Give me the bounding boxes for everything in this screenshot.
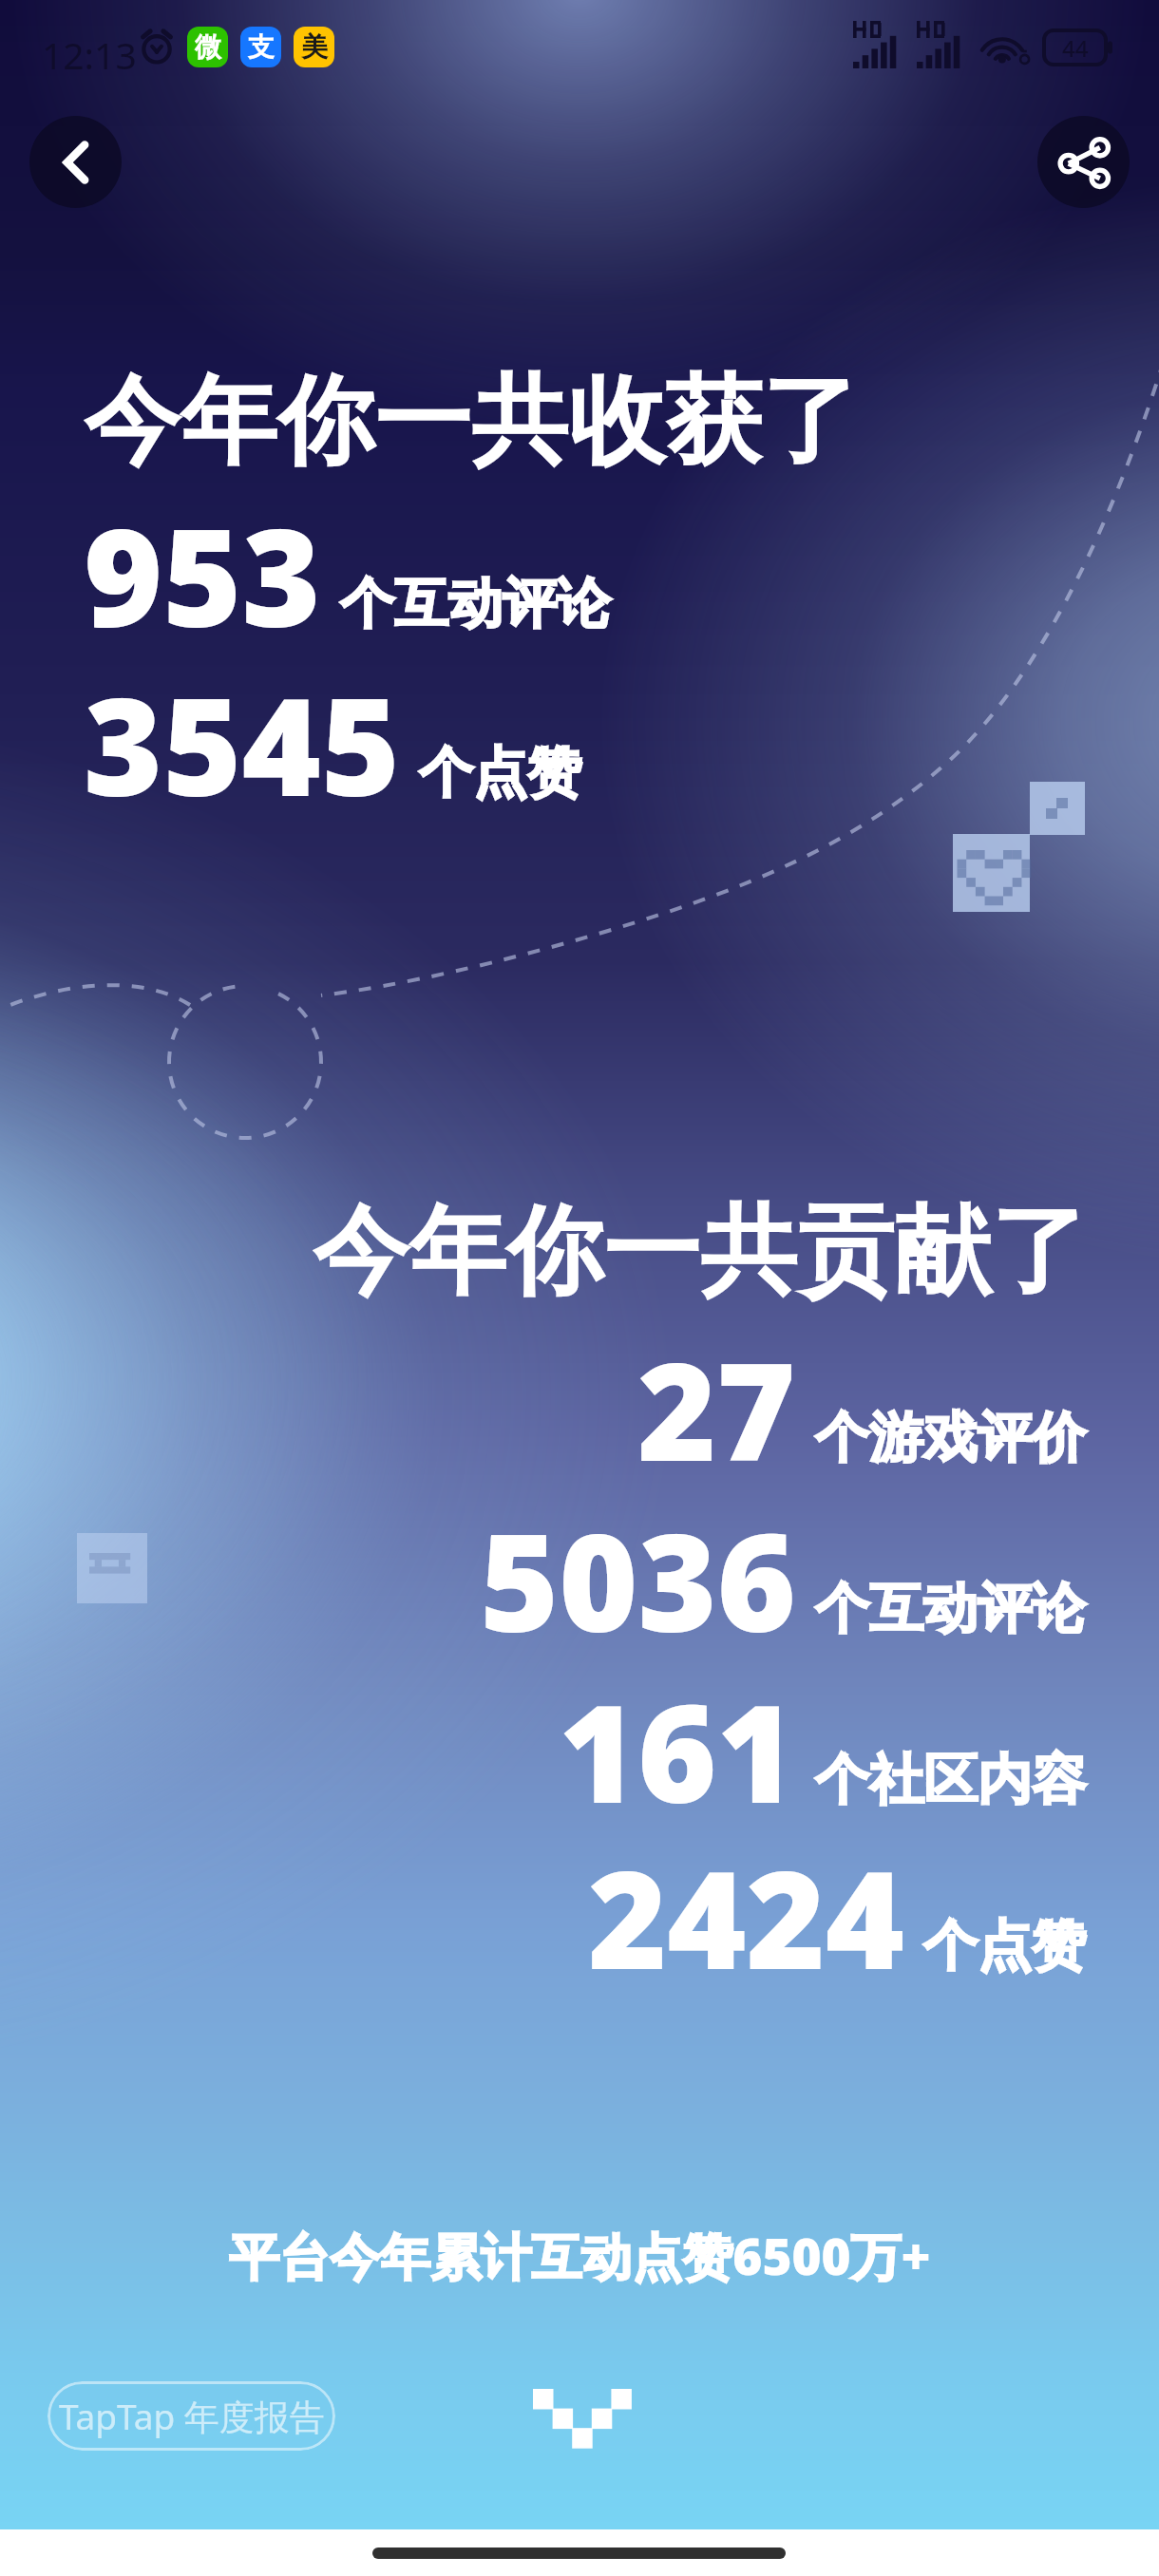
staticText: 微: [195, 30, 221, 64]
staticText: 27: [637, 1316, 796, 1500]
staticText: 今年你一共贡献了: [313, 1191, 1088, 1313]
button[interactable]: TapTap 年度报告: [47, 2381, 335, 2451]
staticText: 个点赞: [419, 739, 581, 807]
staticText: 个社区内容: [815, 1746, 1086, 1814]
staticText: 个互动评论: [815, 1575, 1086, 1643]
staticText: 美: [301, 30, 328, 64]
staticText: TapTap 年度报告: [59, 2392, 325, 2440]
staticText: 个互动评论: [340, 570, 611, 638]
staticText: 2424: [588, 1825, 904, 2008]
staticText: 12:13: [42, 29, 137, 80]
staticText: 今年你一共收获了: [84, 361, 859, 483]
staticText: 支: [248, 30, 275, 64]
button[interactable]: Back: [29, 116, 122, 208]
staticText: 个游戏评价: [815, 1404, 1086, 1472]
staticText: 3545: [84, 652, 400, 835]
staticText: 5036: [480, 1487, 796, 1671]
staticText: 44: [1062, 32, 1089, 64]
staticText: 953: [84, 483, 321, 666]
button[interactable]: Share: [1037, 116, 1130, 208]
staticText: 161: [559, 1658, 796, 1842]
staticText: 平台今年累计互动点赞6500万+: [229, 2221, 931, 2289]
staticText: 个点赞: [923, 1912, 1086, 1980]
